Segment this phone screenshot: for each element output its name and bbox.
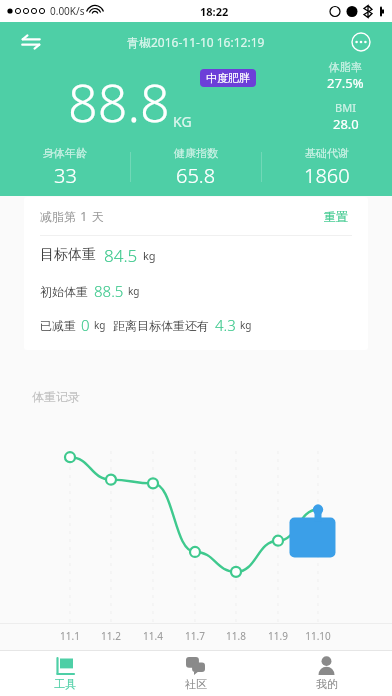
staticText: 1860 [304,162,350,189]
staticText: 11.1 [52,629,88,643]
button[interactable]: 重置 [320,205,352,228]
staticText: 18:22 [200,4,229,19]
staticText: 减脂第 [40,209,76,224]
staticText: 65.8 [176,162,216,189]
staticText: kg [128,284,140,298]
staticText: 11.7 [177,629,213,643]
staticText: 工具 [54,677,76,691]
staticText: 距离目标体重还有 [113,318,209,333]
staticText: 初始体重 [40,284,88,299]
button[interactable]: 健康指数 [131,146,261,189]
staticText: 88.8 [68,66,170,137]
staticText: 已减重 [40,318,76,333]
button[interactable]: 身体年龄 [0,146,130,189]
staticText: 重置 [324,209,348,224]
staticText: 0.00K/s [50,4,85,18]
staticText: kg [240,318,252,332]
staticText: 11.8 [218,629,254,643]
button[interactable]: 工具 [0,651,130,696]
button[interactable]: 中度肥胖 [200,69,256,87]
button[interactable]: More options [344,25,378,59]
staticText: 27.5% [327,74,364,92]
staticText: 目标体重 [40,246,96,264]
staticText: 基础代谢 [305,146,349,160]
button[interactable]: 社区 [130,651,261,696]
staticText: 健康指数 [174,146,218,160]
staticText: 身体年龄 [43,146,87,160]
staticText: 体脂率 [329,60,362,74]
staticText: 28.0 [333,115,359,133]
staticText: 84.5 [104,244,138,267]
staticText: 11.4 [135,629,171,643]
staticText: 4.3 [215,315,236,335]
staticText: 1 [80,207,88,225]
staticText: 0 [81,315,90,335]
staticText: kg [143,248,156,263]
staticText: BMI [335,100,356,115]
staticText: 33 [54,162,77,189]
button[interactable]: Switch user [14,25,48,59]
staticText: 88.5 [94,281,124,301]
button[interactable]: 减脂第 [24,197,368,350]
staticText: 社区 [185,677,207,691]
staticText: 11.2 [93,629,129,643]
staticText: 体重记录 [32,389,80,404]
staticText: 青椒2016-11-10 16:12:19 [127,34,265,50]
staticText: 天 [92,209,104,224]
button[interactable]: 我的 [261,651,392,696]
staticText: KG [173,112,192,131]
staticText: 中度肥胖 [206,71,250,85]
staticText: 11.9 [260,629,296,643]
button[interactable]: 基础代谢 [262,146,392,189]
staticText: kg [94,318,106,332]
staticText: 我的 [316,677,338,691]
staticText: 11.10 [300,629,336,643]
